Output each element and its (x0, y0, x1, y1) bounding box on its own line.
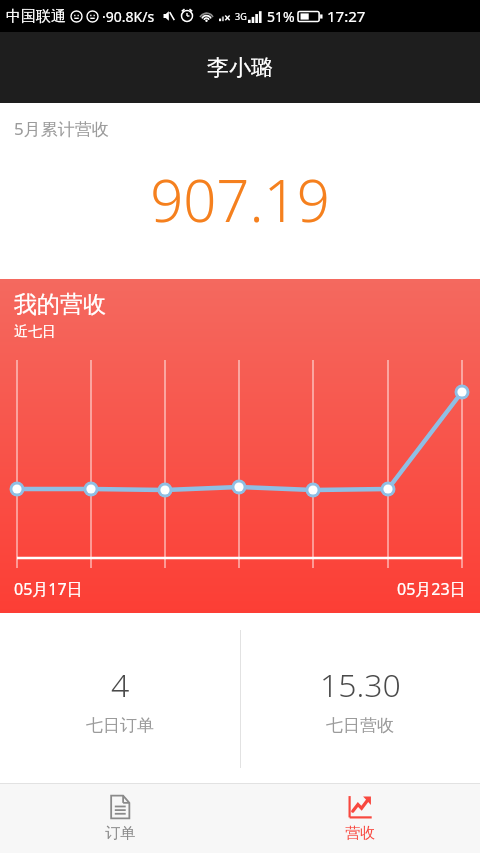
staticText: 907.19 (150, 160, 330, 239)
staticText: 3G (235, 10, 247, 22)
staticText: 15.30 (320, 663, 401, 707)
staticText: 5月累计营收 (14, 117, 109, 140)
button[interactable]: 营收 (240, 784, 480, 853)
staticText: 我的营收 (14, 290, 106, 319)
staticText: 李小璐 (207, 54, 273, 82)
staticText: 05月23日 (397, 578, 466, 600)
button[interactable]: 4 (0, 628, 240, 770)
staticText: 中国联通 (6, 7, 66, 26)
staticText: 七日营收 (326, 715, 394, 736)
staticText: 05月17日 (14, 578, 83, 600)
button[interactable]: 我的营收 (0, 279, 480, 613)
staticText: 近七日 (14, 323, 56, 341)
staticText: 订单 (105, 824, 135, 843)
button[interactable]: 15.30 (240, 628, 480, 770)
staticText: 17:27 (327, 6, 366, 26)
staticText: 七日订单 (86, 715, 154, 736)
staticText: 51% (267, 7, 295, 26)
button[interactable]: 订单 (0, 784, 240, 853)
staticText: ·90.8K/s (102, 7, 155, 26)
staticText: 营收 (345, 824, 375, 843)
staticText: 4 (111, 663, 130, 707)
